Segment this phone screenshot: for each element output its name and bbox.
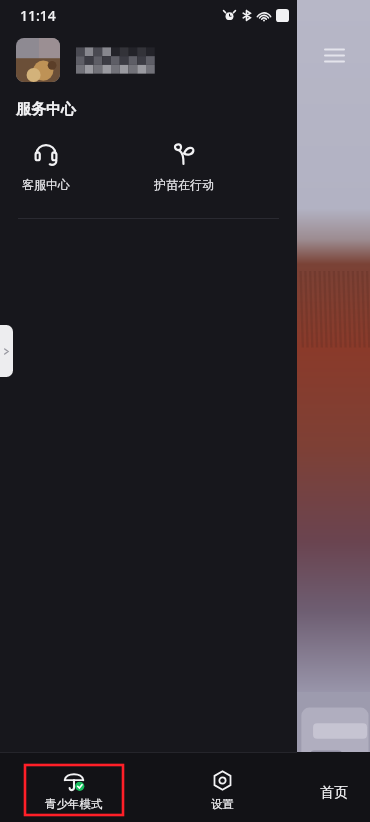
staticText: 护苗在行动 [154,177,214,192]
button[interactable] [16,38,281,82]
staticText: 青少年模式 [45,797,103,811]
button[interactable]: Menu [319,40,349,70]
button[interactable]: 客服中心 [16,139,76,194]
staticText: 11:14 [20,6,56,25]
staticText: 首页 [320,784,348,802]
button[interactable]: 设置 [197,766,248,815]
staticText: 客服中心 [22,177,70,192]
button[interactable]: 护苗在行动 [148,139,220,194]
button[interactable]: Expand panel [0,325,13,377]
staticText: 服务中心 [16,100,76,119]
staticText: 设置 [211,797,234,811]
button[interactable]: 青少年模式 [25,765,123,815]
